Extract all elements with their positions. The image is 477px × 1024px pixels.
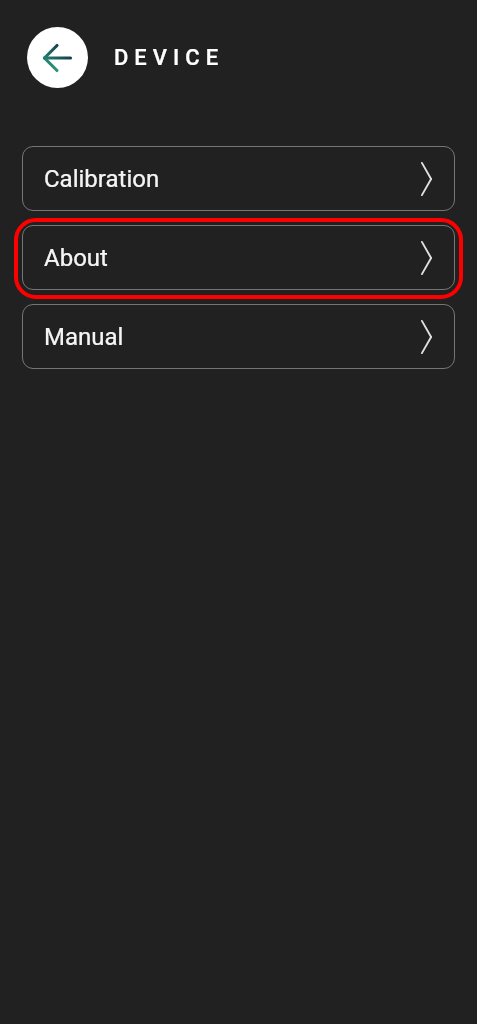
staticText: About <box>44 244 108 272</box>
button[interactable]: About <box>22 225 455 290</box>
button[interactable]: Calibration <box>22 146 455 211</box>
staticText: Manual <box>44 323 124 351</box>
button[interactable]: Manual <box>22 304 455 369</box>
staticText: Calibration <box>44 165 160 193</box>
button[interactable]: Back <box>27 27 88 88</box>
staticText: DEVICE <box>114 45 225 71</box>
